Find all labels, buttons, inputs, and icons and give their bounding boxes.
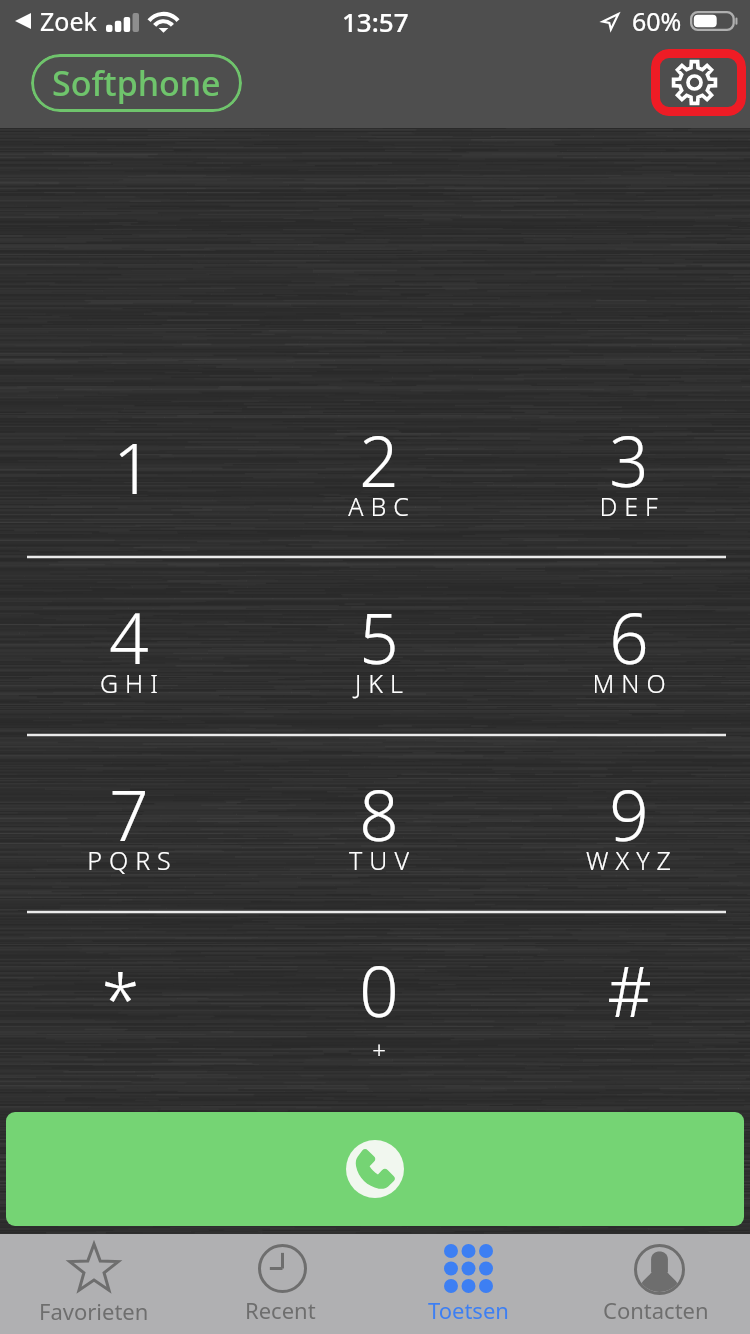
button[interactable]: Softphone xyxy=(31,54,242,112)
staticText: 8 xyxy=(359,767,399,861)
staticText: 2 xyxy=(359,413,399,507)
button[interactable]: * xyxy=(0,943,250,1037)
staticText: 9 xyxy=(609,767,649,861)
button[interactable]: Toetsen xyxy=(374,1234,562,1334)
staticText: Contacten xyxy=(603,1295,709,1325)
button[interactable]: 9 xyxy=(500,767,750,861)
button[interactable]: 7 xyxy=(0,767,250,861)
staticText: ABC xyxy=(348,489,416,523)
button[interactable]: Recent xyxy=(187,1234,374,1334)
staticText: 3 xyxy=(609,413,649,507)
button[interactable]: Contacten xyxy=(562,1234,750,1334)
button[interactable]: 3 xyxy=(500,413,750,507)
button[interactable]: 0 xyxy=(250,943,500,1037)
button[interactable]: Favorieten xyxy=(0,1234,187,1334)
staticText: 5 xyxy=(359,590,399,684)
staticText: Recent xyxy=(245,1295,316,1325)
staticText: * xyxy=(101,951,140,1045)
button[interactable]: 6 xyxy=(500,590,750,684)
button[interactable]: 4 xyxy=(0,590,250,684)
staticText: Zoek xyxy=(40,4,97,38)
staticText: Softphone xyxy=(52,60,221,106)
button[interactable]: Call xyxy=(6,1112,744,1226)
button[interactable]: 1 xyxy=(0,413,250,507)
staticText: 0 xyxy=(359,943,399,1037)
button[interactable]: 5 xyxy=(250,590,500,684)
staticText: Favorieten xyxy=(39,1296,149,1326)
button[interactable]: # xyxy=(500,943,750,1037)
staticText: DEF xyxy=(599,489,665,523)
staticText: 1 xyxy=(113,420,153,514)
staticText: 7 xyxy=(109,767,149,861)
staticText: 13:57 xyxy=(342,4,409,39)
button[interactable]: 2 xyxy=(250,413,500,507)
staticText: # xyxy=(607,943,652,1037)
staticText: PQRS xyxy=(87,843,178,877)
staticText: TUV xyxy=(349,843,416,877)
button[interactable]: 8 xyxy=(250,767,500,861)
staticText: MNO xyxy=(592,666,673,700)
staticText: 60% xyxy=(632,4,682,38)
staticText: GHI xyxy=(100,666,165,700)
staticText: WXYZ xyxy=(586,843,678,877)
staticText: Toetsen xyxy=(428,1295,509,1325)
button[interactable]: Settings xyxy=(651,49,746,116)
staticText: 4 xyxy=(109,590,149,684)
staticText: JKL xyxy=(355,666,410,700)
staticText: 6 xyxy=(609,590,649,684)
staticText: + xyxy=(372,1033,393,1066)
